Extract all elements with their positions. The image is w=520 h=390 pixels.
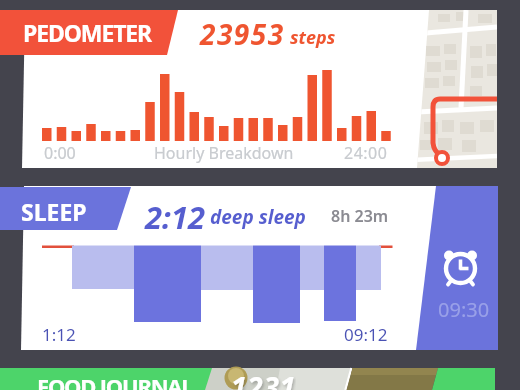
staticText: 09:12 xyxy=(344,323,388,346)
staticText: FOOD JOURNAL xyxy=(37,371,193,390)
staticText: SLEEP xyxy=(21,196,87,227)
staticText: 09:30 xyxy=(438,296,490,323)
staticText: steps xyxy=(290,25,336,50)
staticText: 8h 23m xyxy=(331,205,389,227)
button[interactable] xyxy=(424,186,498,350)
staticText: Hourly Breakdown xyxy=(154,142,294,164)
staticText: 0:00 xyxy=(44,142,76,164)
button[interactable]: PEDOMETER xyxy=(0,10,520,168)
staticText: 24:00 xyxy=(344,142,388,164)
staticText: 1:12 xyxy=(42,323,76,346)
staticText: 23953 xyxy=(200,15,285,53)
staticText: 2:12 xyxy=(145,196,206,238)
staticText: PEDOMETER xyxy=(23,17,152,48)
button[interactable]: FOOD JOURNAL xyxy=(0,368,520,390)
staticText: 1231 xyxy=(231,368,296,390)
button[interactable]: SLEEP xyxy=(0,186,520,350)
staticText: deep sleep xyxy=(210,204,306,230)
